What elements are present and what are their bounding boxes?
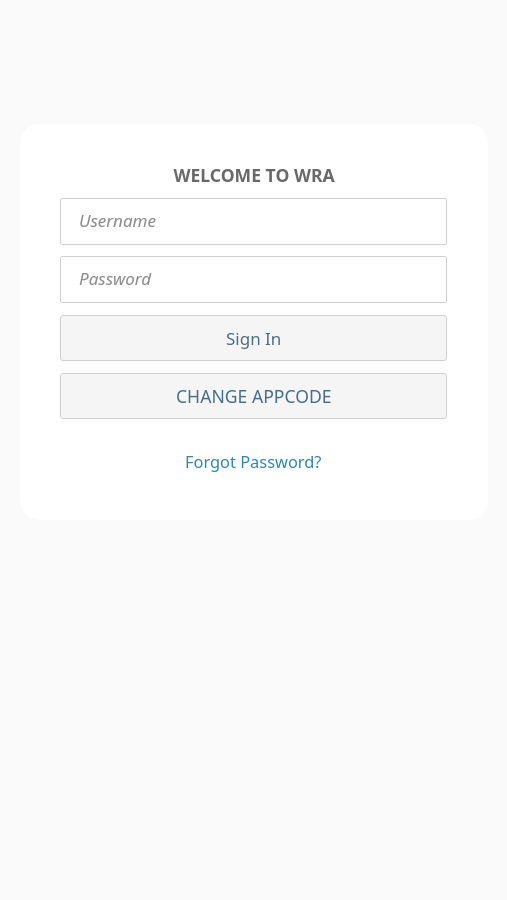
staticText: Sign In bbox=[226, 327, 282, 350]
button[interactable]: Sign In bbox=[60, 315, 447, 361]
staticText: Password bbox=[79, 267, 152, 290]
staticText: CHANGE APPCODE bbox=[176, 384, 332, 408]
button[interactable]: Password bbox=[60, 256, 447, 303]
staticText: Forgot Password? bbox=[185, 450, 322, 472]
button[interactable]: CHANGE APPCODE bbox=[60, 373, 447, 419]
staticText: Username bbox=[79, 209, 156, 232]
button[interactable]: Forgot Password? bbox=[60, 447, 447, 475]
staticText: WELCOME TO WRA bbox=[173, 163, 335, 187]
button[interactable]: Username bbox=[60, 198, 447, 245]
